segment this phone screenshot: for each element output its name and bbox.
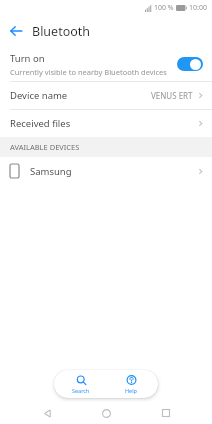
button[interactable]: Back [0, 15, 32, 47]
button[interactable]: Device name [0, 82, 212, 109]
staticText: Device name [10, 89, 68, 102]
staticText: Currently visible to nearby Bluetooth de… [10, 67, 167, 77]
button[interactable]: Search [57, 370, 105, 398]
staticText: VENUS ERT [151, 90, 193, 101]
staticText: Samsung [30, 165, 72, 178]
staticText: 10:00 [189, 3, 207, 13]
button[interactable]: Received files [0, 110, 212, 137]
button[interactable]: Back [34, 402, 60, 424]
staticText: Turn on [10, 52, 45, 65]
staticText: AVAILABLE DEVICES [10, 142, 80, 152]
staticText: Search [72, 387, 90, 394]
staticText: Bluetooth [32, 23, 91, 40]
staticText: Received files [10, 117, 71, 130]
button[interactable]: Bluetooth on [177, 57, 203, 71]
button[interactable]: Samsung [0, 157, 212, 185]
button[interactable]: Recents [153, 402, 179, 424]
button[interactable]: Turn on [0, 47, 212, 81]
staticText: Help [125, 387, 137, 394]
button[interactable]: Home [93, 402, 119, 424]
button[interactable]: Help [107, 370, 155, 398]
staticText: 100 % [154, 3, 174, 13]
